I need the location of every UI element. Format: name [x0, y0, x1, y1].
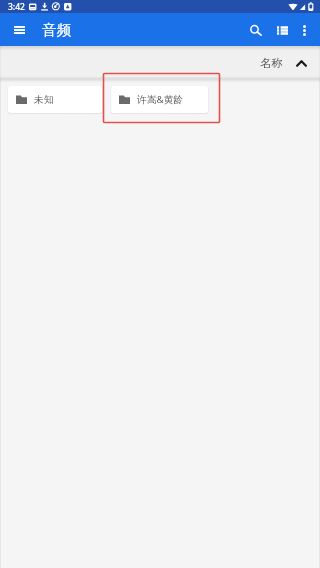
button[interactable]: Switch view [268, 16, 296, 44]
staticText: 未知 [34, 94, 54, 106]
staticText: 3:42 [8, 1, 25, 13]
button[interactable]: Navigation menu [3, 13, 36, 46]
staticText: 名称 [260, 56, 283, 70]
button[interactable]: 未知 [8, 86, 102, 113]
button[interactable]: Search [242, 16, 270, 44]
button[interactable]: More options [290, 16, 318, 44]
button[interactable]: 名称 [252, 51, 320, 75]
staticText: 音频 [42, 21, 71, 39]
button[interactable]: 许嵩&黄龄 [111, 86, 208, 113]
staticText: 许嵩&黄龄 [137, 93, 184, 106]
